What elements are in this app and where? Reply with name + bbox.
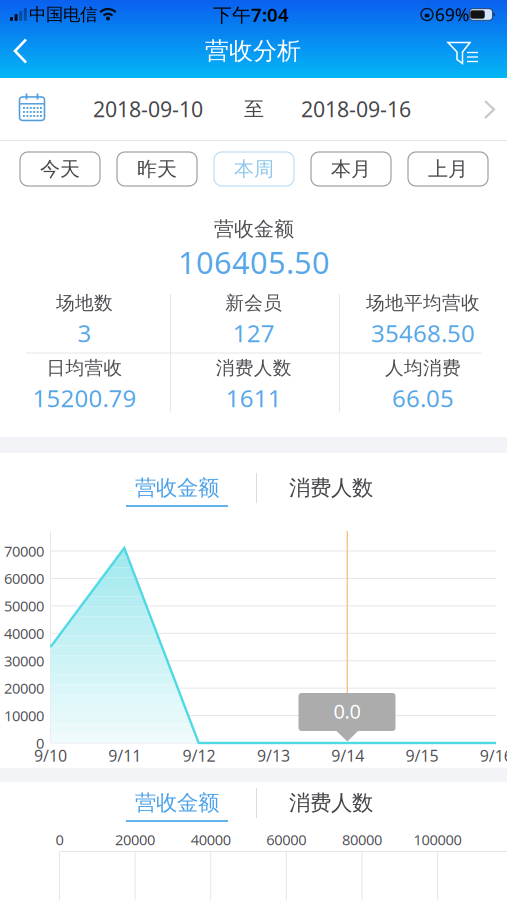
staticText: 100000 bbox=[413, 830, 461, 849]
staticText: 0 bbox=[36, 733, 44, 753]
staticText: 9/10 bbox=[34, 745, 67, 766]
staticText: 40000 bbox=[191, 830, 231, 849]
button[interactable]: 今天 bbox=[20, 152, 100, 186]
staticText: 下午7:04 bbox=[213, 2, 289, 27]
staticText: 69% bbox=[435, 3, 469, 26]
staticText: 营收金额 bbox=[135, 475, 219, 501]
staticText: 场地数 bbox=[56, 291, 113, 314]
button[interactable]: 消费人数 bbox=[271, 468, 391, 508]
button[interactable]: 营收金额 bbox=[117, 468, 237, 508]
staticText: 消费人数 bbox=[216, 356, 292, 379]
button[interactable]: 上月 bbox=[408, 152, 488, 186]
button[interactable]: Filter bbox=[441, 28, 485, 74]
staticText: 营收金额 bbox=[135, 790, 219, 816]
staticText: 0.0 bbox=[333, 698, 360, 724]
staticText: 至 bbox=[244, 97, 264, 121]
staticText: 35468.50 bbox=[371, 317, 475, 349]
staticText: 9/16 bbox=[480, 745, 507, 766]
staticText: 80000 bbox=[342, 830, 382, 849]
button[interactable]: 消费人数 bbox=[271, 783, 391, 823]
staticText: 0 bbox=[55, 830, 63, 849]
staticText: 127 bbox=[233, 317, 275, 349]
button[interactable]: 本月 bbox=[311, 152, 391, 186]
staticText: 9/15 bbox=[405, 745, 438, 766]
staticText: 营收分析 bbox=[205, 36, 301, 66]
staticText: 106405.50 bbox=[178, 242, 330, 282]
staticText: 消费人数 bbox=[289, 475, 373, 501]
staticText: 昨天 bbox=[137, 157, 177, 181]
staticText: 营收金额 bbox=[214, 217, 294, 241]
staticText: 3 bbox=[77, 317, 91, 349]
staticText: 中国电信 bbox=[29, 4, 97, 25]
staticText: 20000 bbox=[4, 678, 44, 698]
staticText: 2018-09-16 bbox=[301, 95, 411, 123]
staticText: 今天 bbox=[40, 157, 80, 181]
staticText: 消费人数 bbox=[289, 790, 373, 816]
staticText: 场地平均营收 bbox=[366, 291, 480, 314]
staticText: 人均消费 bbox=[385, 356, 461, 379]
staticText: 70000 bbox=[4, 541, 44, 561]
staticText: 50000 bbox=[4, 596, 44, 616]
staticText: 日均营收 bbox=[46, 356, 122, 379]
staticText: 60000 bbox=[266, 830, 306, 849]
staticText: 9/12 bbox=[183, 745, 216, 766]
staticText: 15200.79 bbox=[32, 382, 136, 414]
staticText: 9/13 bbox=[257, 745, 290, 766]
staticText: 2018-09-10 bbox=[93, 95, 203, 123]
button[interactable]: 昨天 bbox=[117, 152, 197, 186]
staticText: 10000 bbox=[4, 706, 44, 725]
staticText: 本月 bbox=[331, 157, 371, 181]
staticText: 9/11 bbox=[108, 745, 141, 766]
button[interactable]: 营收金额 bbox=[117, 783, 237, 823]
staticText: 本周 bbox=[234, 157, 274, 181]
staticText: 66.05 bbox=[392, 382, 454, 414]
staticText: 1611 bbox=[226, 382, 282, 414]
staticText: 9/14 bbox=[331, 745, 364, 766]
staticText: 上月 bbox=[428, 157, 468, 181]
button[interactable]: 本周 bbox=[214, 152, 294, 186]
staticText: 40000 bbox=[4, 623, 44, 643]
staticText: 60000 bbox=[4, 569, 44, 588]
button[interactable]: Back bbox=[0, 28, 40, 74]
staticText: 30000 bbox=[4, 651, 44, 670]
button[interactable]: Select date range bbox=[0, 78, 507, 140]
staticText: 20000 bbox=[115, 830, 155, 849]
staticText: 新会员 bbox=[225, 291, 282, 314]
